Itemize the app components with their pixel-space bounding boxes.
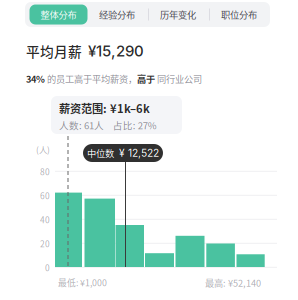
staticText: 80 <box>40 165 50 178</box>
staticText: 平均月薪 <box>26 41 82 61</box>
staticText: ¥15,290 <box>88 42 144 60</box>
staticText: ¥ 12,522 <box>119 147 159 159</box>
staticText: 整体分布 <box>40 8 76 21</box>
button[interactable]: 经验分布 <box>88 2 145 27</box>
staticText: 的员工高于平均薪资， <box>45 72 137 85</box>
staticText: 占比: 27% <box>113 118 157 132</box>
staticText: 最高: ¥52,140 <box>205 276 261 289</box>
staticText: 20 <box>40 237 50 250</box>
button[interactable]: 职位分布 <box>210 2 267 27</box>
staticText: 中位数 <box>87 146 114 160</box>
staticText: 0 <box>45 261 50 274</box>
staticText: 经验分布 <box>99 8 135 21</box>
button[interactable]: 历年变化 <box>149 2 206 27</box>
staticText: 40 <box>40 213 50 226</box>
staticText: 同行业公司 <box>155 72 202 85</box>
staticText: 高于 <box>137 72 155 85</box>
staticText: (人) <box>36 143 50 156</box>
staticText: 34% <box>26 72 45 85</box>
button[interactable]: 整体分布 <box>29 4 87 24</box>
staticText: 60 <box>40 189 50 202</box>
staticText: 人数: 61人 <box>59 118 104 132</box>
staticText: 历年变化 <box>160 8 196 21</box>
staticText: 最低: ¥1,000 <box>58 276 107 289</box>
staticText: 薪资范围: ¥1k–6k <box>59 100 150 116</box>
staticText: 职位分布 <box>221 8 257 21</box>
